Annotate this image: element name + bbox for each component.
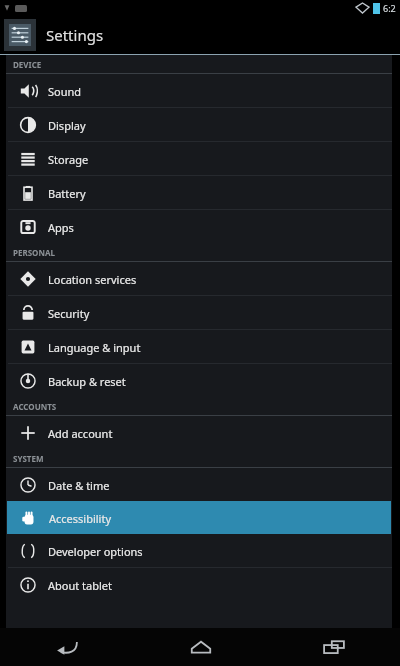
staticText: Add account	[48, 426, 113, 441]
button[interactable]: Backup & reset	[6, 364, 392, 397]
button[interactable]: Security	[6, 296, 392, 329]
staticText: Security	[48, 306, 90, 321]
button[interactable]: Add account	[6, 416, 392, 449]
staticText: ACCOUNTS	[13, 401, 57, 412]
staticText: Developer options	[48, 544, 143, 559]
staticText: PERSONAL	[13, 247, 55, 258]
button[interactable]: Developer options	[6, 534, 392, 567]
button[interactable]: About tablet	[6, 568, 392, 601]
button[interactable]: Accessibility	[7, 501, 391, 534]
button[interactable]: Back	[0, 628, 134, 666]
button[interactable]: Settings app icon	[4, 19, 36, 51]
staticText: About tablet	[48, 578, 112, 593]
button[interactable]: Storage	[6, 142, 392, 175]
staticText: Storage	[48, 152, 89, 167]
staticText: Language & input	[48, 340, 141, 355]
button[interactable]: Date & time	[6, 468, 392, 501]
staticText: Backup & reset	[48, 374, 126, 389]
button[interactable]: Display	[6, 108, 392, 141]
staticText: 6:2	[383, 2, 396, 14]
staticText: DEVICE	[13, 59, 42, 70]
staticText: Sound	[48, 84, 82, 99]
button[interactable]: Language & input	[6, 330, 392, 363]
staticText: SYSTEM	[13, 453, 44, 464]
button[interactable]: Recent apps	[267, 628, 400, 666]
staticText: Date & time	[48, 478, 110, 493]
button[interactable]: Apps	[6, 210, 392, 243]
button[interactable]: Battery	[6, 176, 392, 209]
staticText: Location services	[48, 272, 137, 287]
button[interactable]: Home	[134, 628, 267, 666]
staticText: Accessibility	[49, 511, 112, 526]
staticText: Battery	[48, 186, 86, 201]
staticText: Settings	[46, 25, 104, 45]
button[interactable]: Location services	[6, 262, 392, 295]
staticText: Apps	[48, 220, 74, 235]
button[interactable]: Sound	[6, 74, 392, 107]
staticText: Display	[48, 118, 86, 133]
